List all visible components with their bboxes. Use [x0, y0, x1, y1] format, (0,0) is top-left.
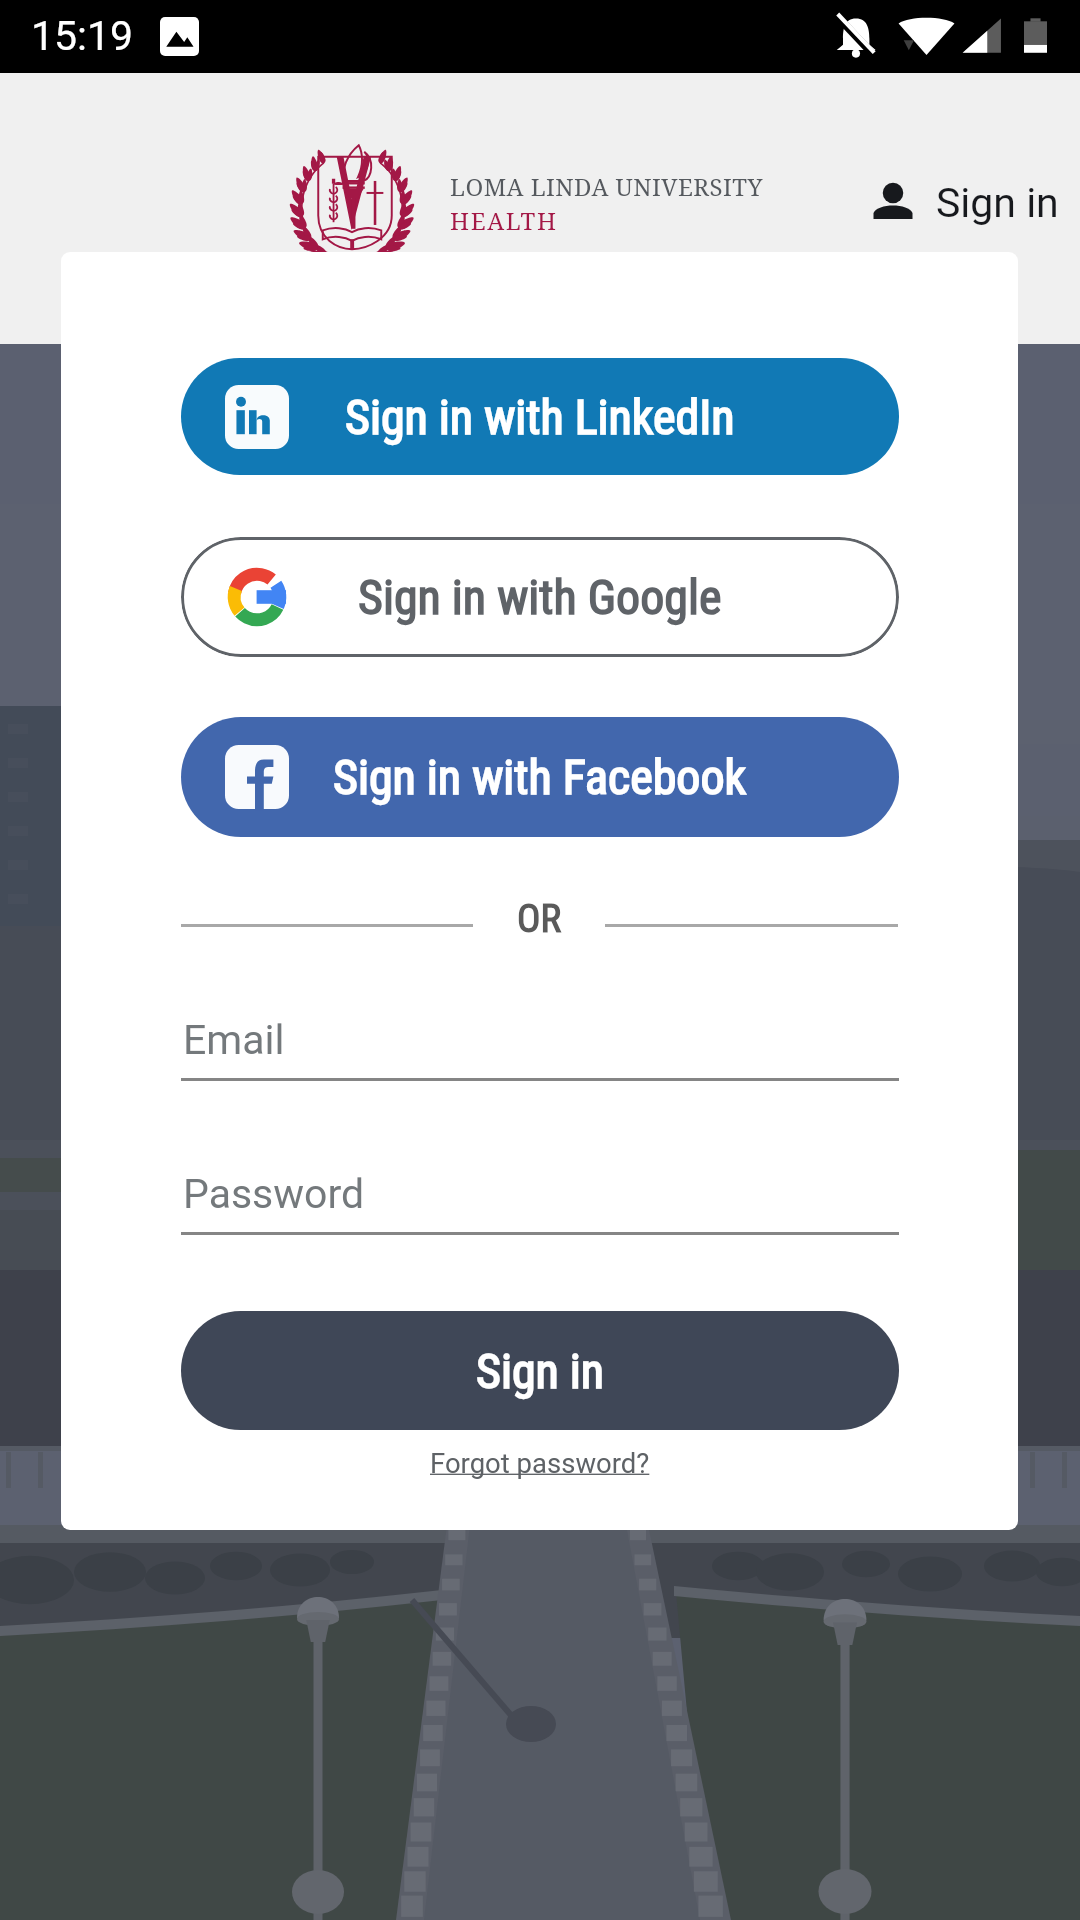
button[interactable]: Sign in with LinkedIn [181, 358, 899, 475]
staticText: Sign in [476, 1343, 605, 1399]
button[interactable]: Forgot password? [430, 1447, 650, 1479]
staticText: Sign in [936, 179, 1059, 227]
staticText: HEALTH [450, 204, 558, 237]
button[interactable]: Sign in [858, 168, 1071, 238]
button[interactable]: Password [181, 1156, 899, 1240]
staticText: Sign in with LinkedIn [345, 389, 735, 445]
staticText: 15:19 [31, 12, 134, 60]
staticText: Sign in with Google [358, 569, 722, 625]
staticText: Password [183, 1170, 365, 1218]
staticText: Email [183, 1016, 285, 1064]
staticText: LOMA LINDA UNIVERSITY [450, 170, 763, 203]
button[interactable]: Sign in with Facebook [181, 717, 899, 837]
staticText: Sign in with Facebook [333, 749, 747, 805]
button[interactable]: Sign in with Google [181, 537, 899, 657]
button[interactable]: Email [181, 1002, 899, 1086]
staticText: OR [517, 896, 562, 942]
button[interactable]: Sign in [181, 1311, 899, 1430]
